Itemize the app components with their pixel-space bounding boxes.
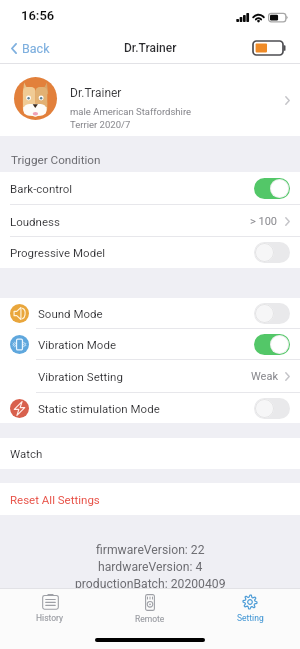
staticText: Setting xyxy=(237,613,264,623)
button[interactable]: Toggle off xyxy=(254,398,290,419)
staticText: Loudness xyxy=(10,215,250,228)
staticText: > 100 xyxy=(250,215,278,228)
staticText: Vibration Mode xyxy=(38,338,254,351)
staticText: Back xyxy=(22,41,50,56)
staticText: Weak xyxy=(251,370,278,383)
button[interactable]: Back xyxy=(0,32,56,64)
button[interactable]: Vibration Mode xyxy=(0,329,300,360)
staticText: Progressive Model xyxy=(10,246,254,259)
button[interactable]: Toggle off xyxy=(254,303,290,324)
staticText: Terrier 2020/7 xyxy=(70,119,131,130)
staticText: Bark-control xyxy=(10,182,254,195)
staticText: History xyxy=(36,613,64,623)
staticText: Vibration Setting xyxy=(38,370,251,383)
staticText: male American Staffordshire xyxy=(70,106,192,117)
button[interactable]: Dr.Trainer xyxy=(0,64,300,136)
staticText: Static stimulation Mode xyxy=(38,402,254,415)
button[interactable]: Watch xyxy=(0,438,300,469)
button[interactable]: Setting xyxy=(200,589,300,623)
button[interactable]: Bark-control xyxy=(0,172,300,205)
button[interactable]: Toggle on xyxy=(254,178,290,199)
button[interactable]: Progressive Model xyxy=(0,237,300,268)
staticText: Dr.Trainer xyxy=(124,41,177,55)
button[interactable]: Battery level xyxy=(253,32,300,64)
staticText: Trigger Condition xyxy=(11,153,101,167)
staticText: Dr.Trainer xyxy=(70,86,122,100)
button[interactable]: Remote xyxy=(100,589,200,624)
staticText: Reset All Settings xyxy=(10,493,100,506)
button[interactable]: Sound Mode xyxy=(0,298,300,329)
button[interactable]: Loudness xyxy=(0,205,300,237)
button[interactable]: Reset All Settings xyxy=(0,483,300,515)
button[interactable]: Toggle off xyxy=(254,242,290,263)
button[interactable]: Toggle on xyxy=(254,334,290,355)
staticText: productionBatch: 20200409 xyxy=(75,577,226,588)
staticText: 16:56 xyxy=(21,8,55,23)
button[interactable]: History xyxy=(0,589,100,623)
staticText: Sound Mode xyxy=(38,307,254,320)
staticText: hardwareVersion: 4 xyxy=(98,560,203,574)
staticText: Watch xyxy=(10,447,43,460)
button[interactable]: Vibration Setting xyxy=(0,360,300,393)
staticText: firmwareVersion: 22 xyxy=(96,543,205,557)
button[interactable]: Static stimulation Mode xyxy=(0,393,300,423)
staticText: Remote xyxy=(135,614,165,624)
